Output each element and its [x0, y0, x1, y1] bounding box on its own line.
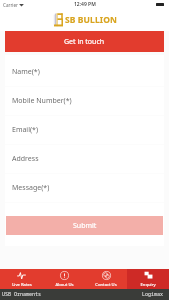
- staticText: Address: [12, 154, 39, 164]
- button[interactable]: Submit: [6, 216, 163, 235]
- staticText: Live Rates: [12, 282, 32, 288]
- button[interactable]: Address: [5, 145, 164, 174]
- staticText: About Us: [55, 282, 74, 288]
- button[interactable]: Name(*): [5, 58, 164, 87]
- button[interactable]: Get in touch: [5, 31, 164, 52]
- staticText: USB Ornaments: [2, 291, 42, 298]
- staticText: SB BULLION: [65, 14, 118, 26]
- button[interactable]: Email(*): [5, 116, 164, 145]
- button[interactable]: Enquiry: [127, 269, 169, 289]
- staticText: Get in touch: [64, 37, 105, 47]
- button[interactable]: Live Rates: [0, 269, 43, 289]
- staticText: Contact Us: [95, 282, 117, 288]
- staticText: Mobile Number(*): [12, 96, 72, 106]
- staticText: Message(*): [12, 183, 50, 193]
- button[interactable]: Contact Us: [85, 269, 127, 289]
- button[interactable]: About Us: [43, 269, 85, 289]
- button[interactable]: Message(*): [5, 174, 164, 203]
- button[interactable]: Mobile Number(*): [5, 87, 164, 116]
- staticText: Email(*): [12, 125, 39, 135]
- staticText: Submit: [73, 221, 97, 231]
- staticText: Logimax: [142, 291, 164, 298]
- staticText: Name(*): [12, 67, 40, 77]
- staticText: 12:49 PM: [74, 1, 96, 8]
- staticText: Enquiry: [140, 282, 156, 288]
- staticText: Carrier: [3, 2, 18, 8]
